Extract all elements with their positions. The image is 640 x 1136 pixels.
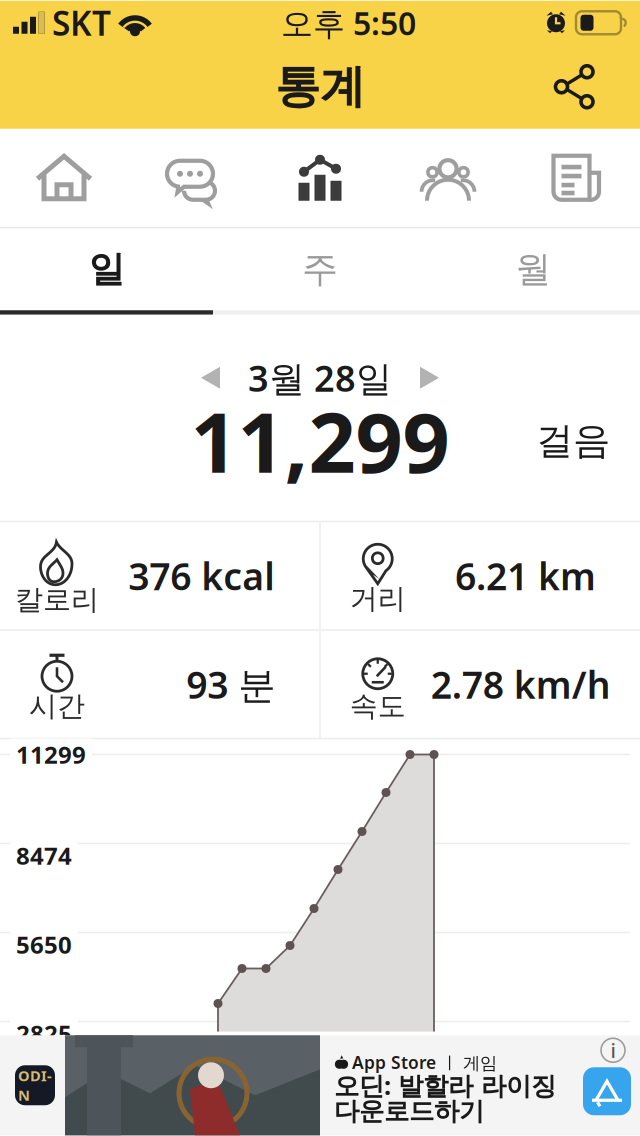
- staticText: 오후 5:50: [281, 1, 416, 44]
- staticText: 통계: [275, 59, 365, 115]
- button[interactable]: Home: [0, 129, 128, 227]
- button[interactable]: News: [512, 129, 640, 227]
- staticText: 칼로리: [15, 583, 99, 617]
- staticText: 6.21 km: [455, 551, 596, 601]
- button[interactable]: 주: [213, 228, 427, 310]
- staticText: 2.78 km/h: [431, 659, 611, 709]
- staticText: 거리: [350, 582, 406, 616]
- staticText: 걸음: [536, 418, 610, 464]
- button[interactable]: 일: [0, 228, 213, 310]
- staticText: 시간: [29, 689, 85, 723]
- staticText: 속도: [350, 689, 406, 723]
- staticText: i: [610, 1037, 615, 1064]
- staticText: ODIN: [18, 1066, 52, 1105]
- button[interactable]: Share: [543, 55, 611, 119]
- staticText: 11,299: [190, 386, 449, 496]
- staticText: 376 kcal: [128, 551, 275, 601]
- staticText: 8474: [16, 840, 72, 871]
- button[interactable]: Previous day: [173, 355, 248, 401]
- staticText: 월: [515, 247, 551, 291]
- button[interactable]: Next day: [392, 355, 467, 401]
- button[interactable]: App Store ad: 오딘 발할라 라이징: [0, 1035, 640, 1135]
- button[interactable]: 월: [427, 228, 640, 310]
- staticText: 11299: [16, 739, 86, 770]
- staticText: 3월 28일: [248, 354, 392, 402]
- staticText: 주: [302, 247, 338, 291]
- staticText: 오딘: 발할라 라이징: [334, 1068, 556, 1102]
- staticText: App Store ㅣ 게임: [352, 1051, 497, 1074]
- staticText: 일: [89, 247, 125, 291]
- button[interactable]: Statistics: [256, 129, 384, 227]
- staticText: 5650: [16, 929, 72, 960]
- staticText: 93 분: [186, 659, 275, 709]
- staticText: 2825: [16, 1018, 72, 1049]
- staticText: SKT: [52, 1, 111, 45]
- staticText: 다운로드하기: [334, 1096, 484, 1127]
- button[interactable]: Chat: [128, 129, 256, 227]
- button[interactable]: Friends: [384, 129, 512, 227]
